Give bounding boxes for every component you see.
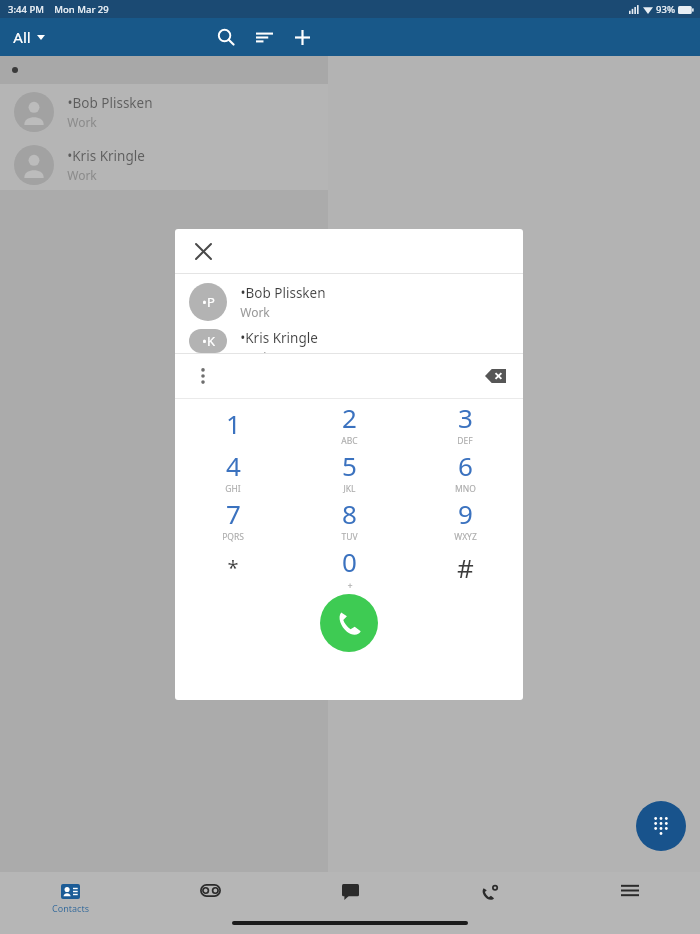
button[interactable]: *: [175, 543, 291, 591]
button[interactable]: Messages: [280, 872, 420, 922]
button[interactable]: Backspace: [475, 356, 515, 396]
staticText: 6: [458, 448, 473, 483]
staticText: 3:44 PM: [8, 3, 44, 16]
staticText: PQRS: [222, 531, 244, 543]
staticText: Mon Mar 29: [54, 3, 109, 16]
button[interactable]: 1: [175, 399, 291, 447]
staticText: GHI: [225, 483, 241, 495]
staticText: Work: [67, 114, 97, 130]
staticText: 93%: [656, 3, 675, 16]
button[interactable]: Voicemail: [140, 872, 280, 922]
staticText: Work: [240, 349, 270, 353]
staticText: JKL: [343, 483, 356, 495]
button[interactable]: 4: [175, 447, 291, 495]
button[interactable]: 0: [291, 543, 407, 591]
staticText: •P: [202, 293, 215, 311]
button[interactable]: •Kris Kringle: [0, 139, 328, 190]
button[interactable]: Call: [320, 594, 378, 652]
staticText: 7: [226, 496, 241, 531]
button[interactable]: More: [560, 872, 700, 922]
staticText: 4: [226, 448, 241, 483]
button[interactable]: 3: [407, 399, 523, 447]
staticText: TUV: [341, 531, 358, 543]
staticText: Work: [240, 304, 270, 320]
button[interactable]: Contacts: [0, 872, 140, 922]
staticText: Contacts: [52, 902, 89, 914]
staticText: •K: [202, 332, 215, 350]
staticText: 0: [342, 544, 357, 579]
staticText: Work: [67, 167, 97, 183]
button[interactable]: •Bob Plissken: [0, 84, 328, 139]
button[interactable]: More options: [187, 354, 219, 398]
staticText: •Kris Kringle: [67, 147, 145, 165]
button[interactable]: All: [8, 21, 50, 53]
button[interactable]: 7: [175, 495, 291, 543]
button[interactable]: Close: [183, 229, 223, 273]
button[interactable]: Search: [207, 18, 245, 56]
button[interactable]: 9: [407, 495, 523, 543]
staticText: •Kris Kringle: [240, 329, 318, 347]
staticText: •Bob Plissken: [67, 94, 153, 112]
staticText: 3: [458, 400, 473, 435]
staticText: DEF: [457, 435, 473, 447]
button[interactable]: •K: [175, 329, 523, 353]
button[interactable]: Recents: [420, 872, 560, 922]
button[interactable]: Add contact: [283, 18, 321, 56]
button[interactable]: #: [407, 543, 523, 591]
button[interactable]: 8: [291, 495, 407, 543]
staticText: #: [457, 550, 474, 585]
staticText: •Bob Plissken: [240, 284, 326, 302]
staticText: WXYZ: [454, 531, 477, 543]
staticText: 2: [342, 400, 357, 435]
staticText: *: [227, 554, 239, 581]
button[interactable]: •P: [175, 274, 523, 329]
staticText: 9: [458, 496, 473, 531]
staticText: All: [13, 27, 31, 47]
staticText: +: [347, 579, 353, 591]
button[interactable]: 5: [291, 447, 407, 495]
staticText: 5: [342, 448, 357, 483]
staticText: MNO: [455, 483, 476, 495]
button[interactable]: Open dialpad: [636, 801, 686, 851]
staticText: 1: [226, 406, 241, 441]
button[interactable]: 6: [407, 447, 523, 495]
staticText: 8: [342, 496, 357, 531]
button[interactable]: Sort: [245, 18, 283, 56]
button[interactable]: 2: [291, 399, 407, 447]
staticText: ABC: [341, 435, 358, 447]
